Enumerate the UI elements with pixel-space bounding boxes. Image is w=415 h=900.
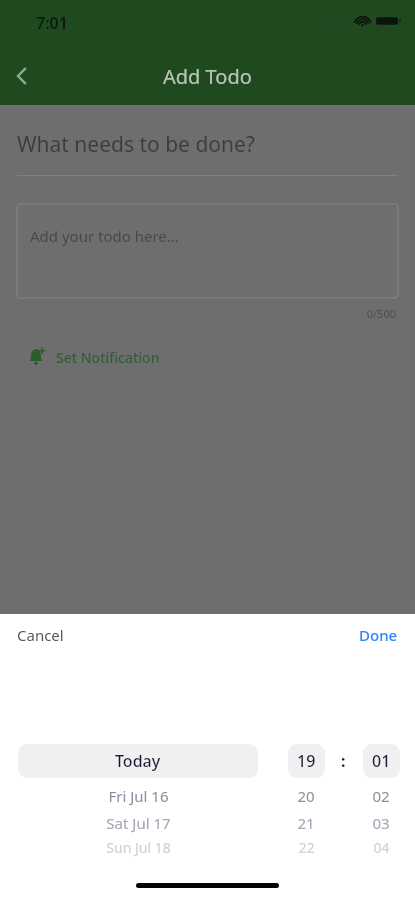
staticText: Done [359,625,398,645]
button[interactable]: Add your todo here... [17,204,398,298]
staticText: Add your todo here... [30,226,179,246]
button[interactable]: 22 [251,838,361,857]
button[interactable]: 03 [326,813,415,833]
button[interactable]: Back [2,56,42,96]
staticText: 21 [297,813,315,833]
staticText: : [341,750,346,772]
button[interactable]: Sat Jul 17 [83,813,193,833]
button[interactable]: 19 [288,744,325,778]
staticText: 02 [372,786,390,806]
staticText: What needs to be done? [17,130,255,159]
button[interactable]: Fri Jul 16 [83,786,193,806]
staticText: 03 [372,813,390,833]
button[interactable]: Today [18,744,258,778]
staticText: 22 [298,838,315,857]
button[interactable]: Cancel [0,619,76,651]
staticText: Set Notification [56,348,160,367]
staticText: Today [115,750,161,772]
button[interactable]: Sun Jul 18 [83,838,193,857]
button[interactable]: 04 [326,838,415,857]
staticText: Sun Jul 18 [106,838,171,857]
button[interactable]: 01 [363,744,400,778]
button[interactable]: 21 [251,813,361,833]
staticText: Cancel [17,625,64,645]
staticText: 01 [372,750,391,772]
button[interactable]: 02 [326,786,415,806]
button[interactable]: Done [347,619,415,651]
staticText: Fri Jul 16 [108,786,169,806]
staticText: 20 [297,786,315,806]
staticText: 7:01 [36,12,68,34]
button[interactable]: Set Notification [24,341,162,373]
button[interactable]: 20 [251,786,361,806]
staticText: 0/500 [0,306,396,321]
staticText: Add Todo [163,63,252,90]
staticText: 19 [297,750,316,772]
staticText: 04 [373,838,390,857]
staticText: Sat Jul 17 [106,813,171,833]
